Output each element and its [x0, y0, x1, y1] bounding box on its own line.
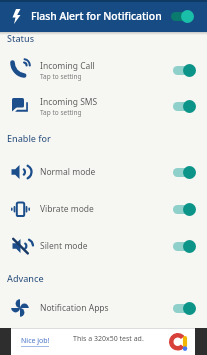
staticText: Vibrate mode	[40, 203, 94, 215]
staticText: Tap to setting	[40, 108, 82, 117]
button[interactable]: Incoming Call	[0, 55, 207, 85]
button[interactable]: Normal mode	[0, 158, 207, 186]
staticText: Status	[7, 32, 35, 44]
staticText: Incoming SMS	[40, 96, 98, 108]
staticText: Flash Alert for Notification	[31, 9, 162, 23]
button[interactable]	[171, 10, 194, 23]
button[interactable]	[173, 64, 196, 77]
button[interactable]	[173, 166, 196, 179]
button[interactable]: Silent mode	[0, 232, 207, 260]
staticText: This a 320x50 test ad.	[73, 334, 144, 344]
button[interactable]: Notification Apps	[0, 294, 207, 322]
staticText: Incoming Call	[40, 60, 95, 72]
button[interactable]	[173, 203, 196, 216]
staticText: Tap to setting	[40, 72, 82, 81]
staticText: Enable for	[7, 132, 51, 144]
staticText: Normal mode	[40, 166, 96, 178]
button[interactable]	[173, 240, 196, 253]
staticText: Silent mode	[40, 240, 88, 252]
button[interactable]	[173, 100, 196, 113]
button[interactable]: Nice job!	[21, 336, 50, 346]
staticText: Advance	[7, 272, 44, 284]
staticText: Notification Apps	[40, 302, 109, 314]
button[interactable]: Incoming SMS	[0, 91, 207, 121]
button[interactable]: Vibrate mode	[0, 195, 207, 223]
button[interactable]	[173, 302, 196, 315]
staticText: Nice job!	[21, 336, 50, 346]
button[interactable]: Nice job!	[0, 328, 207, 355]
